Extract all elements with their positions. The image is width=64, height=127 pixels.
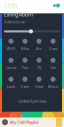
staticText: Living Room (4, 11, 33, 18)
staticText: TV (37, 65, 41, 70)
button[interactable]: Lamp (4, 56, 18, 71)
staticText: Wi-Fi (6, 46, 15, 51)
staticText: Cast (49, 46, 57, 51)
staticText: 11:05 (4, 2, 17, 9)
button[interactable]: Heat (32, 75, 46, 90)
button[interactable]: Blue (18, 37, 32, 52)
staticText: Cam (20, 84, 29, 89)
staticText: Fan (22, 65, 28, 70)
staticText: More (48, 84, 58, 89)
staticText: Air (36, 46, 42, 51)
staticText: Heat (35, 84, 43, 89)
staticText: Updated just now (17, 98, 46, 104)
button[interactable]: Air (32, 37, 46, 52)
staticText: Blue (21, 46, 29, 51)
staticText: Lamp (6, 65, 16, 70)
button[interactable]: Wi-Fi (4, 37, 18, 52)
staticText: Set (50, 65, 55, 70)
button[interactable]: Lock (4, 75, 18, 90)
staticText: My Chill Playlist (10, 120, 38, 125)
button[interactable]: Cam (18, 75, 32, 90)
button[interactable]: Cast (46, 37, 60, 52)
button[interactable]: More (46, 75, 60, 90)
button[interactable]: Fan (18, 56, 32, 71)
button[interactable]: Set (46, 56, 60, 71)
staticText: Lock (7, 84, 15, 89)
staticText: 3 devices on (4, 19, 25, 24)
button[interactable]: TV (32, 56, 46, 71)
